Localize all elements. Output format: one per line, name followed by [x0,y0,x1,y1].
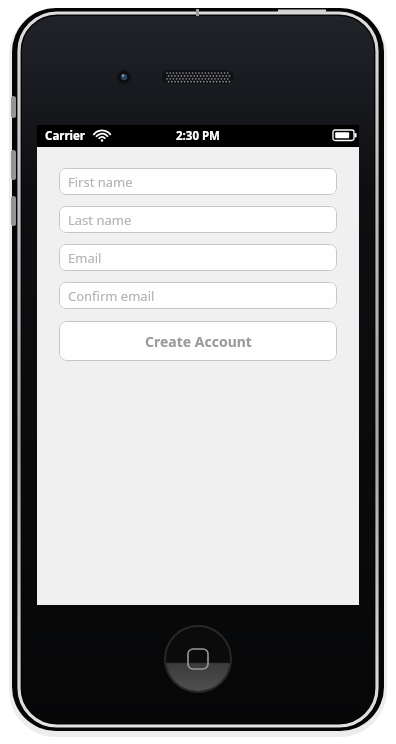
staticText: First name [68,173,133,191]
staticText: Create Account [145,332,252,351]
staticText: Email [68,249,102,267]
button[interactable]: Last name [59,206,337,233]
staticText: Confirm email [68,287,155,305]
other: Battery status [330,126,358,146]
button[interactable]: First name [59,168,337,195]
button[interactable]: Confirm email [59,282,337,309]
staticText: 2:30 PM [176,128,220,144]
staticText: Last name [68,211,132,229]
button[interactable]: Create Account [59,321,337,361]
staticText: Carrier [45,128,85,144]
button[interactable]: Home [162,623,234,695]
button[interactable]: Email [59,244,337,271]
